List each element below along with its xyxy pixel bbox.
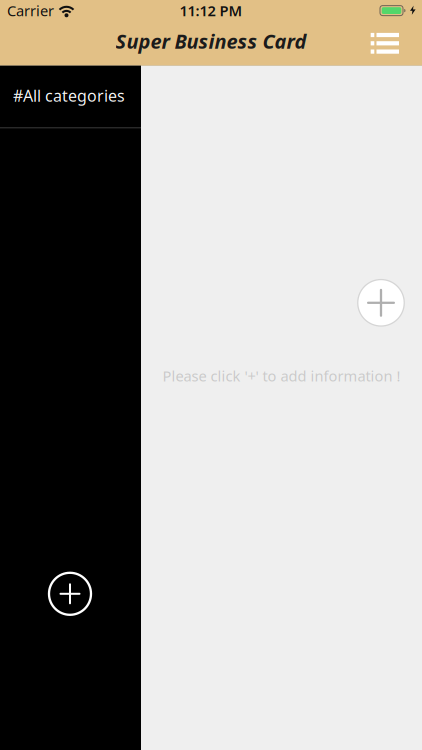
staticText: Carrier — [7, 1, 54, 20]
staticText: 11:12 PM — [179, 1, 242, 20]
staticText: #All categories — [13, 85, 125, 106]
staticText: Please click '+' to add information ! — [162, 366, 400, 386]
button[interactable]: #All categories — [0, 66, 141, 127]
button[interactable]: Add information — [356, 278, 406, 328]
button[interactable]: Categories menu — [371, 26, 422, 63]
staticText: Super Business Card — [115, 28, 306, 54]
button[interactable]: Add category — [47, 571, 93, 617]
